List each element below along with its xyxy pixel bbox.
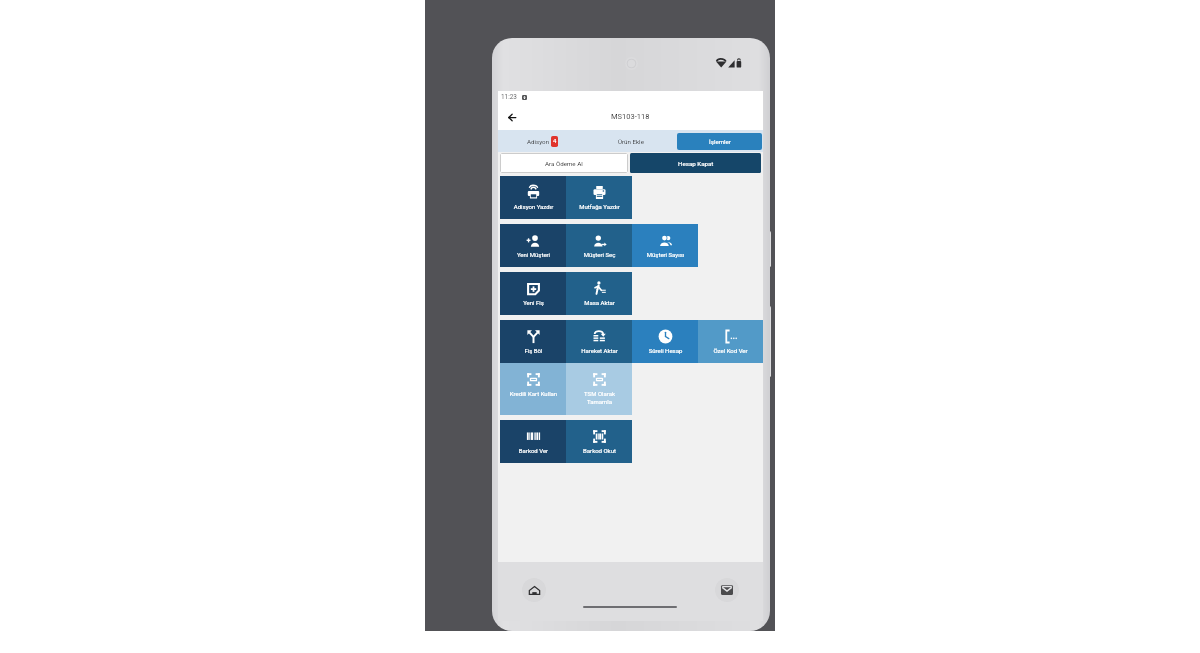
staticText: TSM Olarak Tamamla [573, 390, 626, 405]
button[interactable]: Home [522, 578, 546, 602]
button[interactable]: Hareket Aktar [566, 320, 632, 363]
staticText: Masa Aktar [573, 299, 626, 306]
button[interactable]: Barkod Okut [566, 420, 632, 463]
staticText: Fiş Böl [507, 347, 560, 354]
staticText: Müşteri Sayısı [639, 251, 692, 258]
staticText: Müşteri Seç [573, 251, 626, 258]
button[interactable]: Hesap Kapat [630, 153, 761, 173]
button[interactable]: İşlemler [677, 133, 762, 150]
button[interactable]: Mutfağa Yazdır [566, 176, 632, 219]
staticText: Adisyon [527, 138, 550, 145]
button[interactable]: Adisyon [498, 130, 587, 152]
button[interactable]: Müşteri Sayısı [632, 224, 698, 267]
staticText: Ürün Ekle [618, 138, 644, 145]
button[interactable]: Barkod Ver [500, 420, 566, 463]
staticText: Süreli Hesap [639, 347, 692, 354]
button[interactable]: Ara Ödeme Al [500, 153, 628, 173]
button[interactable]: Kredili Kart Kullan [500, 363, 566, 415]
button[interactable]: Messages [715, 578, 739, 602]
button[interactable]: Yeni Müşteri [500, 224, 566, 267]
staticText: Mutfağa Yazdır [573, 203, 626, 210]
staticText: Kredili Kart Kullan [507, 390, 560, 397]
staticText: Barkod Ver [507, 447, 560, 454]
button[interactable]: Fiş Böl [500, 320, 566, 363]
staticText: Adisyon Yazdır [507, 203, 560, 210]
button[interactable]: TSM Olarak Tamamla [566, 363, 632, 415]
button[interactable]: Özel Kod Ver [698, 320, 763, 363]
staticText: 4 [553, 138, 557, 145]
staticText: 11:23 [501, 93, 517, 101]
staticText: Özel Kod Ver [704, 347, 757, 354]
button[interactable]: Ürün Ekle [587, 130, 675, 152]
button[interactable]: Masa Aktar [566, 272, 632, 315]
button[interactable]: Adisyon Yazdır [500, 176, 566, 219]
staticText: Barkod Okut [573, 447, 626, 454]
staticText: Yeni Fiş [507, 299, 560, 306]
button[interactable]: Yeni Fiş [500, 272, 566, 315]
staticText: Ara Ödeme Al [545, 160, 583, 167]
staticText: MS103-118 [611, 112, 650, 121]
staticText: Yeni Müşteri [507, 251, 560, 258]
staticText: Hesap Kapat [678, 160, 714, 167]
button[interactable]: Müşteri Seç [566, 224, 632, 267]
staticText: Hareket Aktar [573, 347, 626, 354]
button[interactable]: Back [500, 105, 524, 129]
button[interactable]: Süreli Hesap [632, 320, 698, 363]
staticText: İşlemler [709, 138, 731, 145]
